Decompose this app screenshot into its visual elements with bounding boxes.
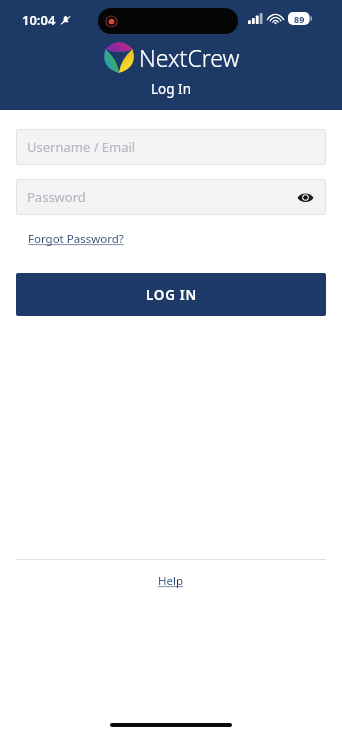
staticText: Forgot Password? [28,231,124,247]
staticText: LOG IN [146,286,197,304]
staticText: 89 [294,13,305,25]
staticText: NextCrew [139,42,240,73]
staticText: Password [27,188,86,206]
button[interactable]: Help [158,573,184,589]
staticText: Username / Email [27,138,136,156]
staticText: 10:04 [22,11,56,29]
staticText: Log In [151,80,191,98]
button[interactable]: LOG IN [16,273,326,316]
button[interactable]: Username / Email [16,129,326,165]
button[interactable]: Show password [295,187,315,207]
button[interactable]: Forgot Password? [28,231,124,247]
staticText: Help [158,573,184,589]
button[interactable]: Password [16,179,326,215]
